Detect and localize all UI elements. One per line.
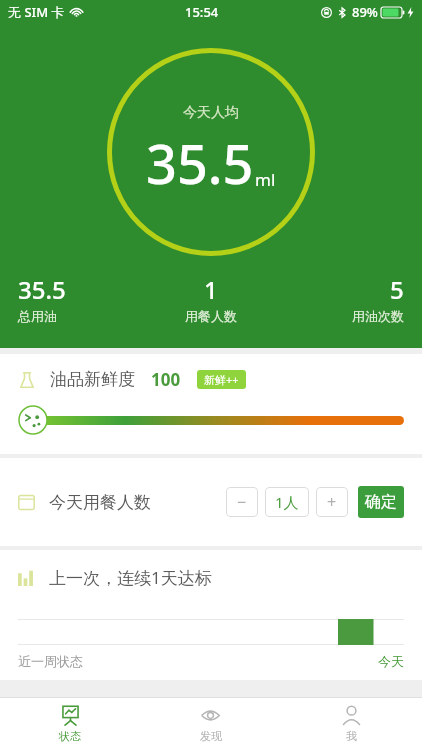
button[interactable]: 我 [281, 698, 422, 750]
staticText: 今天用餐人数 [49, 492, 151, 513]
staticText: 今天人均 [183, 104, 239, 122]
staticText: 1 [204, 273, 218, 306]
button[interactable]: Chart [0, 550, 422, 680]
staticText: 状态 [59, 729, 81, 743]
staticText: 上一次，连续1天达标 [49, 566, 212, 589]
staticText: + [327, 491, 337, 513]
staticText: 89% [352, 3, 378, 21]
staticText: 油品新鲜度 [50, 369, 135, 390]
staticText: ml [255, 168, 276, 191]
staticText: 发现 [200, 729, 222, 743]
other: Chart [18, 569, 35, 586]
button[interactable]: Freshness [0, 354, 422, 454]
staticText: 用油次数 [352, 308, 404, 324]
staticText: − [237, 491, 247, 513]
staticText: 确定 [365, 492, 397, 512]
staticText: 5 [390, 273, 404, 306]
button[interactable]: 确定 [358, 486, 404, 518]
staticText: 今天 [378, 653, 404, 669]
other: Freshness [18, 371, 36, 389]
staticText: 35.5 [146, 126, 254, 200]
staticText: 总用油 [18, 308, 57, 324]
staticText: 100 [151, 368, 181, 391]
button[interactable]: 状态 [0, 698, 140, 750]
staticText: 无 SIM 卡 [8, 3, 65, 21]
staticText: 35.5 [18, 273, 66, 306]
button[interactable]: Decrease [226, 487, 258, 517]
staticText: 15:54 [185, 3, 219, 21]
button[interactable]: 1人 [265, 487, 309, 517]
staticText: 我 [346, 729, 357, 743]
button[interactable]: Increase [316, 487, 348, 517]
button[interactable]: 发现 [140, 698, 281, 750]
staticText: 近一周状态 [18, 653, 83, 669]
staticText: 用餐人数 [185, 308, 237, 324]
staticText: 新鲜++ [204, 372, 239, 387]
other: Calendar [18, 494, 35, 511]
staticText: 1人 [275, 492, 299, 512]
